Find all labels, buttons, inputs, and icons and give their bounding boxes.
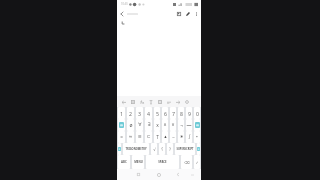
button[interactable]: Navigate up — [119, 8, 125, 19]
staticText: 2 — [129, 110, 132, 117]
button[interactable]: ∃ — [145, 119, 152, 131]
button[interactable]: 7 — [170, 107, 176, 119]
button[interactable]: √ — [151, 143, 157, 155]
staticText: 3 — [138, 110, 141, 117]
button[interactable]: — — [186, 119, 192, 131]
staticText: ≡ — [137, 134, 142, 140]
staticText: ≈ — [128, 134, 133, 140]
staticText: − — [172, 134, 175, 141]
button[interactable]: 9 — [186, 107, 192, 119]
button[interactable]: Keyboard tool 4 — [146, 96, 155, 107]
button[interactable]: Home — [153, 169, 164, 180]
button[interactable]: Keyboard tool 8 — [182, 96, 191, 107]
button[interactable]: ¬ — [178, 119, 184, 131]
button[interactable]: Keyboard tool 5 — [155, 96, 164, 107]
staticText: ø — [129, 122, 133, 129]
staticText: 8 — [180, 110, 183, 117]
button[interactable]: Keyboard tool 6 — [164, 96, 173, 107]
staticText: T — [156, 134, 159, 141]
button[interactable]: ≈ — [127, 131, 134, 143]
staticText: 0 — [196, 110, 199, 117]
button[interactable]: ∨ — [170, 119, 176, 131]
button[interactable] — [118, 119, 125, 131]
staticText: 1 — [120, 110, 123, 117]
button[interactable] — [118, 143, 121, 155]
button[interactable]: ∗ — [178, 131, 184, 143]
button[interactable]: 1 — [118, 107, 125, 119]
staticText: ✓ — [195, 160, 199, 164]
button[interactable]: 8 — [178, 107, 184, 119]
staticText: ∧ — [163, 122, 167, 128]
staticText: ∀ — [138, 122, 142, 128]
staticText: 4 — [147, 110, 150, 117]
staticText: ∫ — [188, 134, 191, 140]
button[interactable]: Keyboard tool 7 — [173, 96, 182, 107]
staticText: ABC — [121, 160, 127, 164]
button[interactable]: x — [154, 119, 160, 131]
button[interactable]: ABC — [118, 155, 130, 169]
button[interactable]: ∫ — [186, 131, 192, 143]
staticText: MENU — [134, 160, 143, 164]
button[interactable]: Hide keyboard — [188, 169, 197, 180]
staticText: ∨ — [171, 122, 175, 128]
button[interactable]: ⌫ — [181, 155, 192, 169]
staticText: TRIGONOMETRY — [125, 147, 147, 151]
button[interactable]: Pen — [184, 8, 192, 19]
button[interactable]: T — [154, 131, 160, 143]
staticText: ¬ — [180, 122, 183, 129]
button[interactable]: { — [159, 143, 165, 155]
button[interactable]: Keyboard tool 3 — [137, 96, 146, 107]
button[interactable]: 0 — [194, 107, 200, 119]
staticText: ⌫ — [184, 160, 190, 164]
staticText: x — [156, 122, 159, 129]
staticText: SPACE — [158, 160, 167, 164]
staticText: • — [196, 134, 198, 141]
button[interactable] — [194, 119, 200, 131]
button[interactable] — [197, 143, 200, 155]
button[interactable]: • — [194, 131, 200, 143]
button[interactable]: ≡ — [136, 131, 143, 143]
button[interactable]: ∧ — [162, 119, 168, 131]
staticText: ∃ — [147, 122, 151, 128]
button[interactable]: More options — [194, 8, 198, 19]
button[interactable]: MENU — [132, 155, 144, 169]
staticText: 10:45 — [121, 2, 128, 6]
staticText: } — [169, 146, 171, 152]
button[interactable]: ▴ — [162, 131, 168, 143]
staticText: ∗ — [179, 134, 184, 140]
button[interactable]: 5 — [154, 107, 160, 119]
staticText: — — [186, 122, 192, 129]
staticText: SUPERSCRIPT — [176, 147, 194, 151]
button[interactable]: Keyboard tool 2 — [128, 96, 137, 107]
button[interactable]: 2 — [127, 107, 134, 119]
staticText: 5 — [156, 110, 159, 117]
button[interactable]: ø — [127, 119, 134, 131]
button[interactable]: ∀ — [136, 119, 143, 131]
button[interactable]: ✓ — [194, 155, 200, 169]
button[interactable]: − — [170, 131, 176, 143]
button[interactable]: Back — [173, 169, 183, 180]
button[interactable]: TRIGONOMETRY — [123, 143, 149, 155]
staticText: 6 — [164, 110, 167, 117]
button[interactable]: 6 — [162, 107, 168, 119]
staticText: 7 — [172, 110, 175, 117]
staticText: √ — [153, 147, 156, 152]
button[interactable]: } — [167, 143, 173, 155]
button[interactable]: SUPERSCRIPT — [175, 143, 195, 155]
button[interactable]: 4 — [145, 107, 152, 119]
button[interactable]: 3 — [136, 107, 143, 119]
staticText: { — [161, 146, 163, 152]
button[interactable]: Recent apps — [133, 169, 143, 180]
button[interactable]: SPACE — [146, 155, 179, 169]
button[interactable]: Keyboard tool 1 — [120, 96, 128, 107]
button[interactable]: ⊂ — [145, 131, 152, 143]
staticText: ▴ — [164, 134, 167, 140]
button[interactable]: Insert table — [175, 8, 183, 19]
staticText: = — [120, 134, 123, 141]
staticText: 9 — [188, 110, 191, 117]
button[interactable]: = — [118, 131, 125, 143]
staticText: ⊂ — [146, 134, 151, 140]
